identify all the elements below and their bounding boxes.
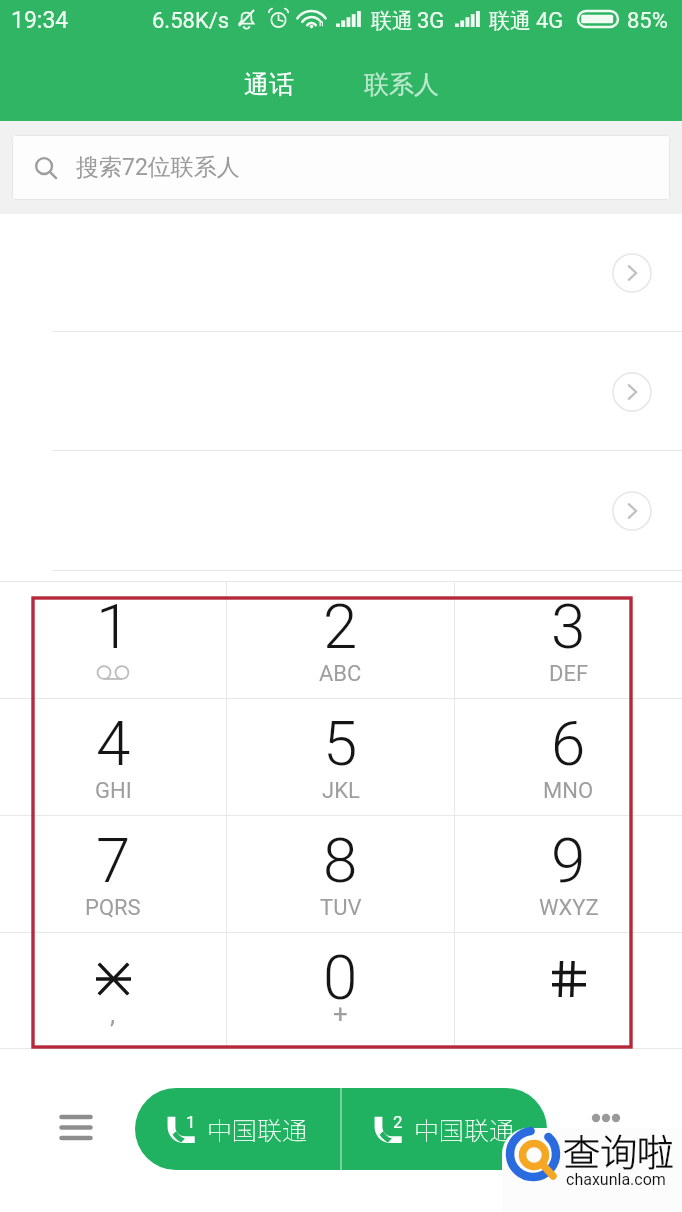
button[interactable]: 1 (0, 582, 226, 698)
staticText: PQRS (85, 895, 141, 921)
staticText: 85% (627, 8, 668, 34)
staticText: 中国联通 (414, 1111, 515, 1147)
staticText: 1 (186, 1112, 196, 1132)
staticText: 0 (323, 941, 358, 1014)
staticText: , (110, 999, 116, 1029)
staticText: GHI (95, 778, 132, 804)
staticText: 查询啦 (563, 1123, 674, 1177)
staticText: + (333, 999, 348, 1029)
button[interactable]: 6 (455, 699, 682, 815)
staticText: 4 (96, 707, 131, 780)
button[interactable]: 1 (135, 1088, 340, 1170)
staticText: 联通 (371, 8, 413, 34)
button[interactable]: , (0, 933, 226, 1048)
button[interactable]: 3 (455, 582, 682, 698)
button[interactable]: 4 (0, 699, 226, 815)
staticText: chaxunla.com (566, 1170, 666, 1189)
staticText: 2 (393, 1112, 403, 1132)
button[interactable]: 搜索72位联系人 (12, 135, 670, 200)
button[interactable] (455, 933, 682, 1048)
staticText: 19:34 (11, 7, 69, 34)
button[interactable]: 8 (227, 816, 454, 932)
button[interactable]: 0 (227, 933, 454, 1048)
other: Details (612, 372, 652, 412)
staticText: 8 (323, 824, 358, 897)
staticText: 9 (551, 824, 586, 897)
staticText: 7 (96, 824, 131, 897)
button[interactable]: 5 (227, 699, 454, 815)
staticText: 6.58K/s (152, 8, 230, 34)
button[interactable]: Menu (46, 1092, 106, 1152)
button[interactable]: 2 (342, 1088, 547, 1170)
button[interactable]: 联系人 (348, 61, 455, 108)
staticText: DEF (549, 661, 589, 687)
button[interactable]: 7 (0, 816, 226, 932)
button[interactable]: 9 (455, 816, 682, 932)
button[interactable]: 通话 (228, 61, 310, 108)
staticText: JKL (322, 778, 360, 804)
staticText: TUV (320, 895, 362, 921)
staticText: 5 (323, 707, 358, 780)
button[interactable]: More options (581, 1092, 631, 1142)
other: Details (612, 491, 652, 531)
staticText: 3 (551, 590, 586, 663)
staticText: 联系人 (364, 69, 439, 100)
staticText: ABC (319, 661, 362, 687)
staticText: 搜索72位联系人 (76, 153, 240, 182)
staticText: 1 (96, 590, 131, 663)
button[interactable]: 2 (227, 582, 454, 698)
staticText: 通话 (244, 69, 294, 100)
staticText: 中国联通 (207, 1111, 308, 1147)
staticText: 6 (551, 707, 586, 780)
staticText: MNO (543, 778, 594, 804)
staticText: 联通 (489, 8, 531, 34)
staticText: 3G (417, 8, 445, 34)
staticText: WXYZ (539, 895, 599, 921)
staticText: 4G (536, 8, 564, 34)
staticText: 2 (323, 590, 358, 663)
other: Details (612, 253, 652, 293)
